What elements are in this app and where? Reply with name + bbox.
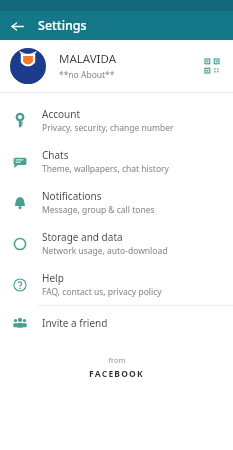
button[interactable]: MALAVIDA — [0, 40, 233, 92]
button[interactable]: Account — [0, 100, 233, 141]
button[interactable]: Back — [7, 16, 27, 36]
staticText: Message, group & call tones — [42, 204, 155, 216]
staticText: Settings — [38, 17, 87, 34]
staticText: Network usage, auto-download — [42, 245, 168, 257]
staticText: Invite a friend — [42, 316, 108, 330]
staticText: Privacy, security, change number — [42, 122, 174, 134]
staticText: MALAVIDA — [59, 51, 117, 67]
button[interactable]: Storage and data — [0, 223, 233, 264]
staticText: Theme, wallpapers, chat history — [42, 163, 169, 175]
button[interactable]: Help — [0, 264, 233, 305]
staticText: Notifications — [42, 189, 102, 203]
staticText: Chats — [42, 148, 69, 162]
staticText: Help — [42, 271, 64, 285]
staticText: **no About** — [59, 69, 115, 81]
staticText: Storage and data — [42, 230, 123, 244]
staticText: FACEBOOK — [89, 368, 144, 380]
button[interactable]: Notifications — [0, 182, 233, 223]
button[interactable]: QR code — [200, 54, 224, 78]
button[interactable]: Chats — [0, 141, 233, 182]
staticText: FAQ, contact us, privacy policy — [42, 286, 162, 298]
button[interactable]: Invite a friend — [0, 306, 233, 339]
staticText: from — [108, 355, 126, 365]
staticText: Account — [42, 107, 81, 121]
